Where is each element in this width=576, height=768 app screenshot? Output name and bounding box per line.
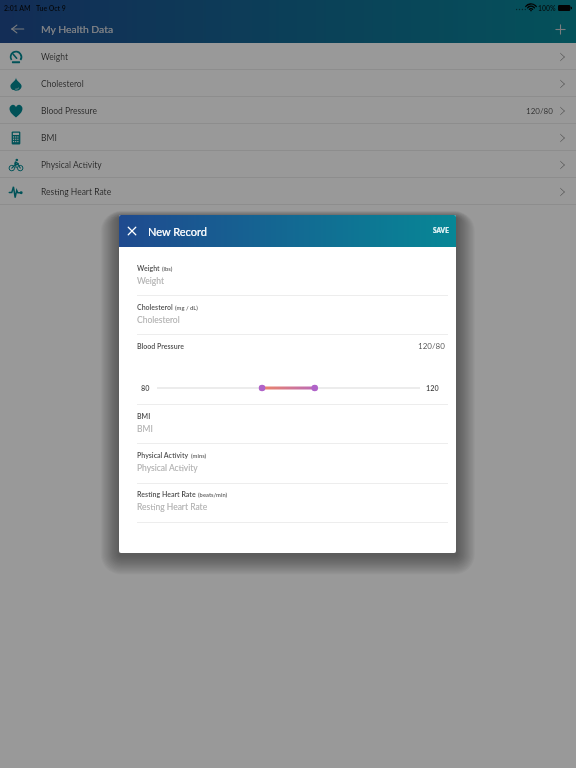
staticText: Blood Pressure xyxy=(137,342,184,350)
staticText: Cholesterol xyxy=(137,315,180,325)
staticText: (beats/min) xyxy=(198,491,228,498)
staticText: Blood Pressure xyxy=(41,106,97,116)
staticText: New Record xyxy=(148,225,207,238)
staticText: 120/80 xyxy=(526,106,553,116)
staticText: SAVE xyxy=(433,227,449,235)
staticText: Physical Activity xyxy=(137,463,198,473)
staticText: BMI xyxy=(137,424,153,434)
staticText: My Health Data xyxy=(41,23,114,35)
staticText: Tue Oct 9 xyxy=(36,4,66,12)
staticText: (lbs) xyxy=(162,265,173,272)
button[interactable]: BMI xyxy=(0,124,576,151)
staticText: Resting Heart Rate xyxy=(137,490,196,498)
button[interactable]: Blood Pressure xyxy=(0,97,576,124)
staticText: BMI xyxy=(41,133,57,143)
staticText: BMI xyxy=(137,412,151,420)
staticText: Physical Activity xyxy=(137,451,189,459)
button[interactable]: Back xyxy=(4,16,30,42)
staticText: Cholesterol xyxy=(41,79,84,89)
button[interactable]: Add record xyxy=(547,16,573,42)
button[interactable]: Resting Heart Rate xyxy=(0,178,576,205)
staticText: Weight xyxy=(137,264,160,272)
button[interactable]: SAVE xyxy=(426,215,456,247)
staticText: Resting Heart Rate xyxy=(137,502,208,512)
staticText: (mins) xyxy=(191,452,207,459)
staticText: Resting Heart Rate xyxy=(41,187,112,197)
button[interactable]: Close xyxy=(121,220,143,242)
staticText: 80 xyxy=(141,384,150,393)
button[interactable]: Weight xyxy=(0,43,576,70)
staticText: 120/80 xyxy=(418,341,445,351)
button[interactable]: Cholesterol xyxy=(0,70,576,97)
staticText: Weight xyxy=(137,276,165,286)
staticText: Weight xyxy=(41,52,69,62)
staticText: 2:01 AM xyxy=(4,4,31,12)
staticText: Physical Activity xyxy=(41,160,102,170)
staticText: 120 xyxy=(426,384,439,393)
staticText: 100% xyxy=(538,4,556,12)
staticText: (mg / dL) xyxy=(175,304,198,311)
button[interactable]: Physical Activity xyxy=(0,151,576,178)
staticText: Cholesterol xyxy=(137,303,173,311)
